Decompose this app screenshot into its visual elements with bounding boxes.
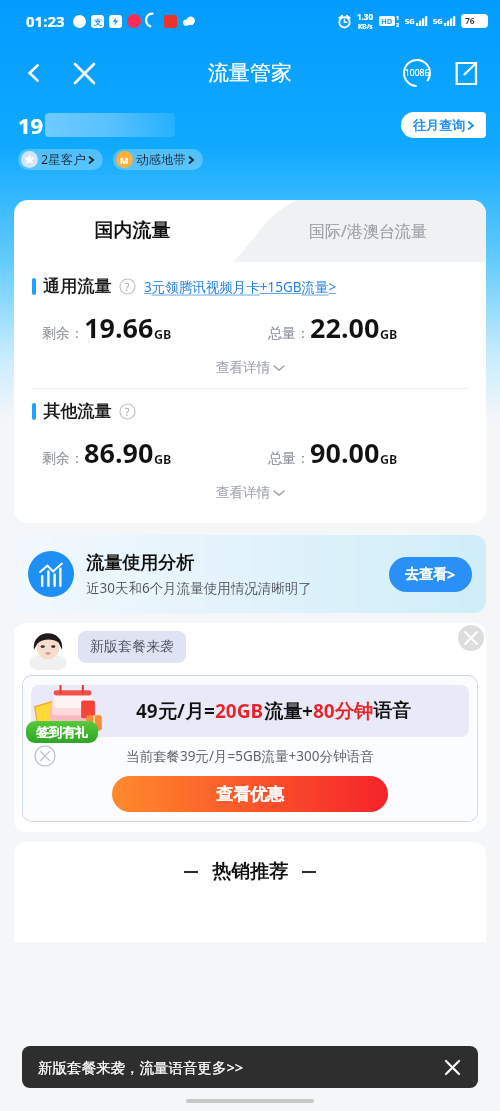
button[interactable]: 查看详情 [14, 359, 486, 376]
staticText: 其他流量 [43, 401, 111, 422]
button[interactable]: 去查看 [389, 557, 472, 592]
button[interactable]: 往月查询 [401, 112, 486, 138]
button[interactable]: 新版套餐来袭，流量语音更多>> [22, 1046, 478, 1088]
staticText: 总量： [268, 325, 310, 343]
staticText: 2 [396, 21, 400, 28]
staticText: 元/月= [158, 698, 215, 724]
staticText: 动感地带 [136, 152, 186, 168]
staticText: HD [381, 16, 393, 26]
staticText: 新版套餐来袭 [90, 638, 174, 656]
button[interactable]: 3元领腾讯视频月卡+15GB流量> [144, 278, 337, 296]
staticText: 80分钟 [313, 698, 373, 724]
staticText: 1 [396, 14, 400, 21]
staticText: 3元领腾讯视频月卡+15GB流量> [144, 278, 337, 296]
staticText: 5G [405, 16, 415, 26]
button[interactable]: 签到有礼 [26, 721, 98, 743]
staticText: 76 [465, 15, 475, 27]
button[interactable]: Help [119, 278, 136, 295]
button[interactable]: Close [64, 53, 104, 93]
button[interactable]: Call 10086 [396, 52, 438, 94]
staticText: 国内流量 [94, 219, 170, 243]
button[interactable]: 2星客户 [18, 149, 103, 170]
button[interactable]: Close promo [458, 625, 484, 651]
staticText: 49 [136, 698, 158, 724]
staticText: GB [154, 326, 172, 343]
staticText: 支 [94, 17, 102, 27]
staticText: M [120, 154, 129, 166]
staticText: 查看详情 [216, 484, 270, 501]
staticText: 19 [18, 110, 44, 140]
staticText: 当前套餐39元/月=5GB流量+300分钟语音 [126, 747, 374, 765]
staticText: GB [154, 451, 172, 468]
staticText: 往月查询 [413, 117, 465, 133]
button[interactable]: Back [14, 53, 54, 93]
button[interactable]: 国内流量 [14, 200, 250, 262]
staticText: 国际/港澳台流量 [309, 220, 427, 242]
button[interactable]: Dismiss [34, 745, 56, 767]
staticText: 10086 [405, 67, 430, 79]
staticText: 流量+ [264, 698, 313, 724]
staticText: 语音 [373, 699, 411, 723]
staticText: 01:23 [26, 11, 65, 31]
staticText: 90.00 [310, 434, 380, 471]
staticText: 通用流量 [43, 276, 111, 297]
staticText: > [447, 565, 456, 584]
staticText: 20GB [215, 698, 264, 724]
staticText: 新版套餐来袭，流量语音更多>> [38, 1057, 244, 1077]
staticText: 剩余： [42, 325, 84, 343]
staticText: 流量管家 [208, 60, 292, 86]
staticText: ? [125, 280, 130, 294]
staticText: 近30天和6个月流量使用情况清晰明了 [86, 579, 312, 597]
staticText: 1.30 [357, 11, 373, 22]
staticText: 查看优惠 [216, 784, 284, 805]
button[interactable]: Dismiss banner [440, 1055, 464, 1079]
staticText: 86.90 [84, 434, 154, 471]
staticText: 剩余： [42, 450, 84, 468]
staticText: 2星客户 [41, 151, 86, 168]
button[interactable]: 流量使用分析 [14, 535, 486, 613]
staticText: 流量使用分析 [86, 552, 194, 575]
staticText: 签到有礼 [36, 724, 88, 740]
staticText: 22.00 [310, 309, 380, 346]
staticText: 总量： [268, 450, 310, 468]
staticText: 5G [433, 16, 443, 26]
staticText: ? [125, 405, 130, 419]
button[interactable]: Help [119, 403, 136, 420]
staticText: GB [380, 451, 398, 468]
button[interactable]: 国际/港澳台流量 [250, 200, 486, 262]
staticText: 去查看 [405, 566, 447, 584]
staticText: 热销推荐 [212, 860, 288, 884]
staticText: 19.66 [84, 309, 154, 346]
button[interactable]: M [113, 149, 203, 170]
button[interactable]: 查看优惠 [112, 776, 388, 812]
staticText: 查看详情 [216, 359, 270, 376]
staticText: GB [380, 326, 398, 343]
staticText: KB/s [358, 22, 373, 31]
button[interactable]: Share [444, 52, 486, 94]
button[interactable]: 查看详情 [14, 484, 486, 501]
